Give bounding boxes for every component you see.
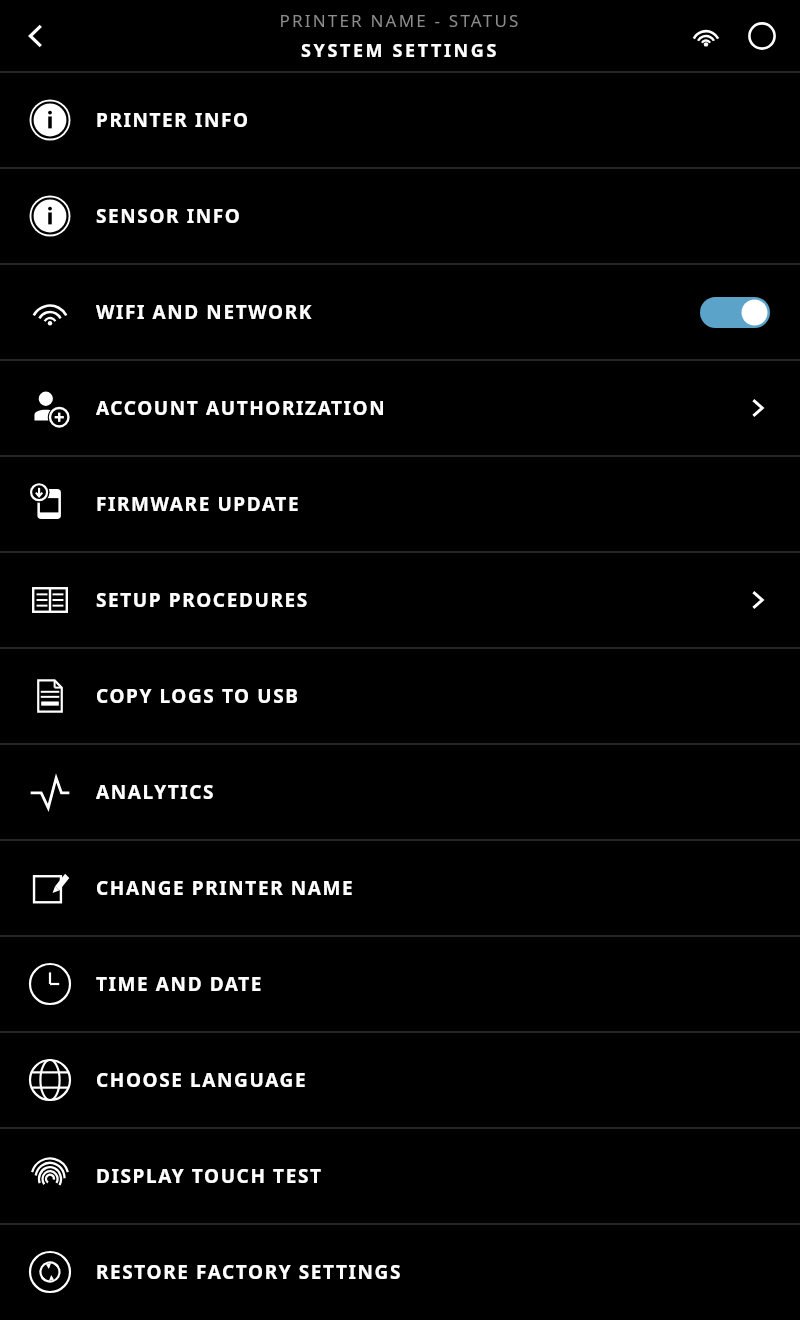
staticText: WIFI AND NETWORK <box>96 299 313 325</box>
button[interactable]: TIME AND DATE <box>0 936 800 1032</box>
staticText: RESTORE FACTORY SETTINGS <box>96 1259 403 1285</box>
staticText: ANALYTICS <box>96 779 216 805</box>
button[interactable]: FIRMWARE UPDATE <box>0 456 800 552</box>
staticText: PRINTER INFO <box>96 107 250 133</box>
staticText: TIME AND DATE <box>96 971 264 997</box>
button[interactable]: WIFI AND NETWORK <box>0 264 800 360</box>
button[interactable]: ACCOUNT AUTHORIZATION <box>0 360 800 456</box>
button[interactable]: COPY LOGS TO USB <box>0 648 800 744</box>
staticText: CHOOSE LANGUAGE <box>96 1067 308 1093</box>
staticText: SETUP PROCEDURES <box>96 587 309 613</box>
button[interactable]: Back <box>8 8 64 64</box>
staticText: CHANGE PRINTER NAME <box>96 875 355 901</box>
staticText: FIRMWARE UPDATE <box>96 491 301 517</box>
staticText: SENSOR INFO <box>96 203 242 229</box>
button[interactable]: SETUP PROCEDURES <box>0 552 800 648</box>
button[interactable]: Wifi status <box>682 12 730 60</box>
button[interactable]: Wifi toggle <box>700 297 770 328</box>
button[interactable]: ANALYTICS <box>0 744 800 840</box>
staticText: PRINTER NAME - STATUS <box>279 9 521 32</box>
staticText: ACCOUNT AUTHORIZATION <box>96 395 387 421</box>
button[interactable]: CHANGE PRINTER NAME <box>0 840 800 936</box>
button[interactable]: Account <box>738 12 786 60</box>
button[interactable]: RESTORE FACTORY SETTINGS <box>0 1224 800 1320</box>
staticText: SYSTEM SETTINGS <box>301 38 499 63</box>
button[interactable]: SENSOR INFO <box>0 168 800 264</box>
staticText: DISPLAY TOUCH TEST <box>96 1163 323 1189</box>
staticText: COPY LOGS TO USB <box>96 683 300 709</box>
button[interactable]: CHOOSE LANGUAGE <box>0 1032 800 1128</box>
button[interactable]: DISPLAY TOUCH TEST <box>0 1128 800 1224</box>
button[interactable]: PRINTER INFO <box>0 72 800 168</box>
